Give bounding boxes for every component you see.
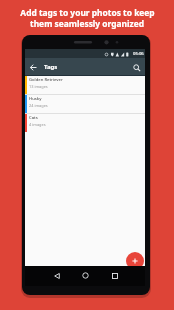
button[interactable] — [126, 252, 144, 270]
button[interactable] — [111, 272, 118, 279]
staticText: Tags — [44, 63, 58, 71]
staticText: 13 images — [29, 84, 48, 89]
staticText: Add tags to your photos to keep — [20, 7, 155, 18]
button[interactable] — [53, 272, 60, 279]
staticText: 05:06 — [133, 51, 144, 57]
staticText: 4 images — [29, 122, 46, 127]
staticText: 24 images — [29, 103, 48, 108]
button[interactable]: Golden Retriever — [25, 76, 145, 95]
button[interactable]: Cats — [25, 114, 145, 132]
staticText: Husky — [29, 96, 42, 102]
staticText: Cats — [29, 115, 38, 121]
button[interactable] — [128, 59, 145, 76]
button[interactable] — [82, 272, 89, 279]
staticText: Golden Retriever — [29, 77, 63, 83]
button[interactable]: Husky — [25, 95, 145, 114]
staticText: them seamlessly organized — [30, 18, 144, 29]
button[interactable] — [25, 59, 42, 76]
